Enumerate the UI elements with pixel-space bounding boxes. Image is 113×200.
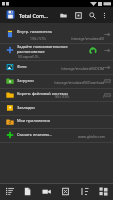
button[interactable]: Sort [0,183,18,200]
staticText: Загрузки [17,78,34,83]
button[interactable]: Multi select [94,183,113,200]
staticText: Закладки [17,105,35,110]
button[interactable]: Open [104,32,111,37]
staticText: Фото [17,64,27,69]
button[interactable]: Задайте пользовательское [0,44,113,61]
button[interactable]: New file [18,183,37,200]
button[interactable]: Open folder [59,10,67,20]
button[interactable]: Search [88,10,96,20]
button[interactable]: Properties [75,183,94,200]
button[interactable]: Open [104,65,111,70]
button[interactable]: Open [104,48,111,53]
staticText: /storage/emulated/0/DCIM [61,66,105,71]
staticText: Корень файловой системы [17,91,68,96]
staticText: Скачать плагины… [17,132,53,137]
staticText: /storage/emulated/0 [71,36,105,41]
button[interactable]: More options [100,10,108,20]
staticText: / [103,94,105,99]
staticText: Мои приложения [17,118,50,123]
staticText: Внутр. накопитель [17,29,53,34]
staticText: /storage/emulated/0/Download [54,80,105,85]
button[interactable]: Мои приложения [0,116,113,129]
staticText: www.ghisler.com [78,134,105,139]
staticText: Задайте пользовательское [17,44,68,49]
button[interactable]: Open [104,79,111,84]
staticText: 9G / 61G [55,94,69,99]
button[interactable]: Загрузки [0,75,113,89]
button[interactable]: Фото [0,61,113,75]
button[interactable]: Корень файловой системы [0,89,113,102]
button[interactable]: Закладки [0,102,113,116]
staticText: расположение [17,49,45,54]
button[interactable]: Camera [37,183,56,200]
button[interactable]: Delete [56,183,75,200]
button[interactable]: Внутр. накопитель [0,23,113,44]
button[interactable]: Скачать плагины… [0,129,113,143]
staticText: 50-карта/U9… [18,54,41,59]
staticText: 19G / 57G [30,36,46,41]
staticText: Total Com… [19,12,49,19]
button[interactable]: Select mode [74,10,82,20]
button[interactable]: Refresh [89,47,97,55]
button[interactable]: Open [104,93,111,98]
